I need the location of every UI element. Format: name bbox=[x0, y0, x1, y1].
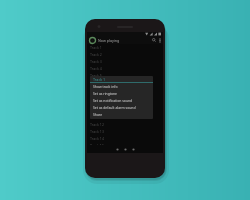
staticText: Show track info bbox=[93, 84, 118, 89]
button[interactable]: Now playing artwork bbox=[89, 37, 96, 44]
button[interactable]: Search bbox=[151, 36, 157, 44]
button[interactable]: Track 11 bbox=[87, 114, 163, 121]
staticText: Track 9 bbox=[90, 101, 102, 106]
staticText: Now playing bbox=[98, 38, 151, 43]
staticText: Set as ringtone bbox=[93, 91, 118, 96]
staticText: Track 1 bbox=[90, 45, 102, 50]
button[interactable]: Track 14 bbox=[87, 135, 163, 142]
button[interactable]: Track 12 bbox=[87, 121, 163, 128]
button[interactable]: Set as default alarm sound bbox=[90, 104, 153, 111]
button[interactable]: Track 8 bbox=[87, 93, 163, 100]
button[interactable]: Set as ringtone bbox=[90, 90, 153, 97]
staticText: Track 12 bbox=[90, 122, 104, 127]
button[interactable]: Track 6 bbox=[87, 79, 163, 86]
staticText: Track 14 bbox=[90, 136, 104, 141]
button[interactable]: Home bbox=[123, 147, 128, 152]
button[interactable]: Track 16 bbox=[87, 149, 163, 153]
button[interactable]: Track 13 bbox=[87, 128, 163, 135]
staticText: Track 15 bbox=[90, 143, 104, 148]
staticText: Track 5 bbox=[90, 73, 102, 78]
button[interactable]: Share bbox=[90, 111, 153, 118]
button[interactable]: Track 10 bbox=[87, 107, 163, 114]
button[interactable]: Show track info bbox=[90, 83, 153, 90]
staticText: Track 2 bbox=[90, 52, 102, 57]
staticText: Track 8 bbox=[90, 94, 102, 99]
staticText: Track 3 bbox=[90, 59, 102, 64]
staticText: Set as notification sound bbox=[93, 98, 133, 103]
staticText: Set as default alarm sound bbox=[93, 105, 136, 110]
staticText: Track 6 bbox=[90, 80, 102, 85]
button[interactable]: Track 9 bbox=[87, 100, 163, 107]
button[interactable]: Track 15 bbox=[87, 142, 163, 149]
staticText: Track 10 bbox=[90, 108, 104, 113]
button[interactable]: Track 2 bbox=[87, 51, 163, 58]
staticText: Share bbox=[93, 112, 103, 117]
button[interactable]: Track 5 bbox=[87, 72, 163, 79]
button[interactable]: Back bbox=[115, 147, 120, 152]
button[interactable]: Track 3 bbox=[87, 58, 163, 65]
button[interactable]: Track 7 bbox=[87, 86, 163, 93]
button[interactable]: More options bbox=[157, 36, 162, 44]
staticText: Track 13 bbox=[90, 129, 104, 134]
staticText: Track 1 bbox=[93, 77, 106, 82]
button[interactable]: Track 4 bbox=[87, 65, 163, 72]
button[interactable]: Set as notification sound bbox=[90, 97, 153, 104]
button[interactable]: Track 1 bbox=[87, 44, 163, 51]
button[interactable]: Recents bbox=[131, 147, 136, 152]
staticText: Track 7 bbox=[90, 87, 102, 92]
staticText: Track 4 bbox=[90, 66, 102, 71]
staticText: Track 11 bbox=[90, 115, 104, 120]
